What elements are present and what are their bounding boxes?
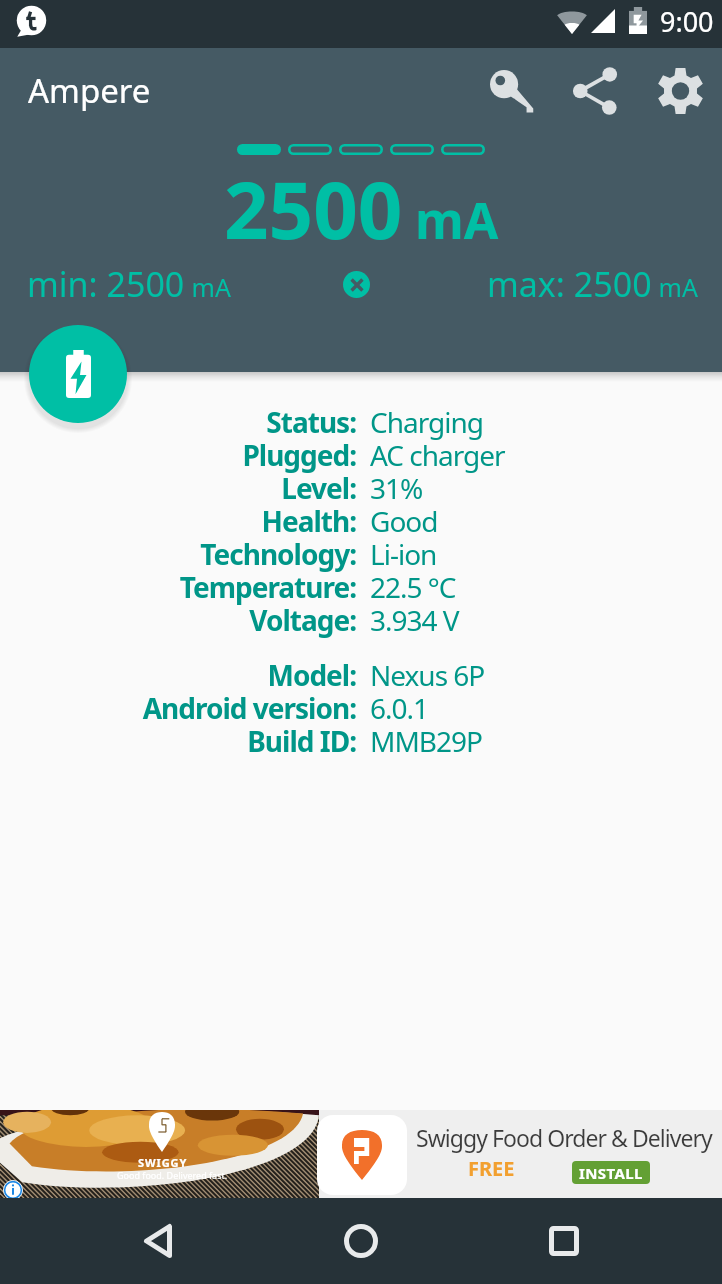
staticText: Voltage: bbox=[249, 601, 356, 639]
staticText: 9:00 bbox=[660, 3, 714, 40]
button[interactable]: Back bbox=[118, 1198, 198, 1284]
staticText: Level: bbox=[281, 469, 356, 507]
staticText: Li-ion bbox=[370, 535, 437, 573]
staticText: 31% bbox=[370, 469, 423, 507]
staticText: FREE bbox=[468, 1155, 515, 1182]
staticText: Charging bbox=[370, 403, 483, 441]
staticText: MMB29P bbox=[370, 722, 482, 760]
button[interactable]: Home bbox=[321, 1198, 401, 1284]
button[interactable]: INSTALL bbox=[572, 1161, 650, 1184]
staticText: Good food. Delivered fast. bbox=[117, 1169, 228, 1181]
staticText: mA bbox=[185, 270, 231, 304]
button[interactable]: SWIGGY bbox=[0, 1110, 722, 1198]
staticText: 2500 bbox=[224, 156, 403, 262]
button[interactable]: Root access bbox=[477, 57, 545, 125]
staticText: Ampere bbox=[28, 68, 151, 113]
button[interactable]: Share bbox=[561, 57, 629, 125]
staticText: 6.0.1 bbox=[370, 689, 429, 727]
button[interactable]: Ad info bbox=[3, 1180, 23, 1198]
staticText: min: 2500 bbox=[27, 261, 185, 307]
staticText: Build ID: bbox=[247, 722, 356, 760]
staticText: AC charger bbox=[370, 436, 505, 474]
staticText: Health: bbox=[261, 502, 356, 540]
staticText: Good bbox=[370, 502, 438, 540]
staticText: mA bbox=[415, 186, 499, 254]
staticText: Status: bbox=[266, 403, 356, 441]
staticText: Plugged: bbox=[242, 436, 356, 474]
staticText: 3.934 V bbox=[370, 601, 459, 639]
staticText: mA bbox=[652, 270, 698, 304]
button[interactable]: Charging bbox=[29, 325, 127, 423]
button[interactable]: Settings bbox=[646, 57, 714, 125]
button[interactable]: Reset bbox=[343, 271, 370, 298]
staticText: max: 2500 bbox=[487, 261, 652, 307]
staticText: INSTALL bbox=[579, 1163, 643, 1183]
button[interactable]: Recents bbox=[524, 1198, 604, 1284]
staticText: Model: bbox=[267, 656, 356, 694]
staticText: Android version: bbox=[142, 689, 356, 727]
staticText: Technology: bbox=[200, 535, 356, 573]
staticText: Swiggy Food Order & Delivery bbox=[416, 1122, 712, 1153]
staticText: SWIGGY bbox=[138, 1155, 188, 1170]
staticText: 22.5 °C bbox=[370, 568, 456, 606]
staticText: Temperature: bbox=[179, 568, 356, 606]
staticText: Nexus 6P bbox=[370, 656, 485, 694]
